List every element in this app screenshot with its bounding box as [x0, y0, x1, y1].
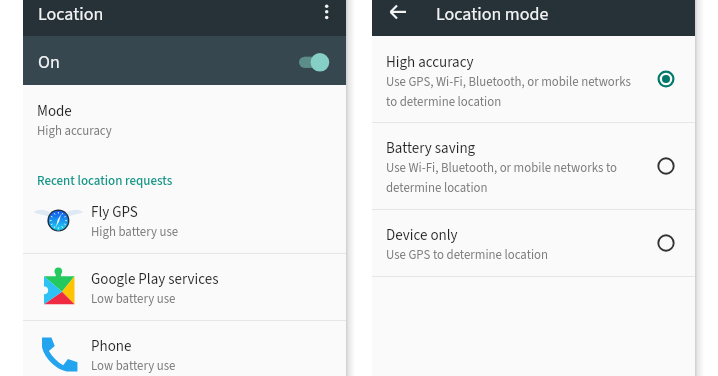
button[interactable]: Mode: [23, 85, 346, 147]
button[interactable]: Google Play services: [23, 253, 346, 320]
button[interactable]: Back: [376, 0, 418, 30]
staticText: On: [38, 50, 60, 76]
staticText: High accuracy: [386, 52, 474, 73]
staticText: High accuracy: [37, 122, 112, 140]
button[interactable]: Phone: [23, 320, 346, 376]
button[interactable]: On: [23, 36, 346, 85]
staticText: Use GPS to determine location: [386, 246, 549, 264]
button[interactable]: High accuracy: [372, 36, 695, 122]
button[interactable]: More options: [311, 0, 346, 32]
staticText: Phone: [91, 336, 132, 357]
staticText: Device only: [386, 225, 458, 246]
button[interactable]: Device only: [372, 209, 695, 276]
staticText: Use Wi-Fi, Bluetooth, or mobile networks…: [386, 159, 617, 197]
staticText: Location: [38, 2, 104, 28]
button[interactable]: Battery saving: [372, 122, 695, 209]
staticText: Use GPS, Wi-Fi, Bluetooth, or mobile net…: [386, 73, 631, 111]
staticText: High battery use: [91, 223, 179, 241]
staticText: Battery saving: [386, 138, 476, 159]
staticText: Recent location requests: [37, 172, 173, 191]
staticText: Low battery use: [91, 357, 176, 375]
button[interactable]: Recent location requests: [23, 168, 346, 190]
staticText: Mode: [37, 101, 72, 122]
staticText: Location mode: [436, 2, 549, 28]
staticText: Low battery use: [91, 290, 176, 308]
staticText: Google Play services: [91, 269, 219, 290]
button[interactable]: Location: [23, 0, 346, 36]
staticText: Fly GPS: [91, 202, 138, 223]
button[interactable]: Fly GPS: [23, 186, 346, 253]
